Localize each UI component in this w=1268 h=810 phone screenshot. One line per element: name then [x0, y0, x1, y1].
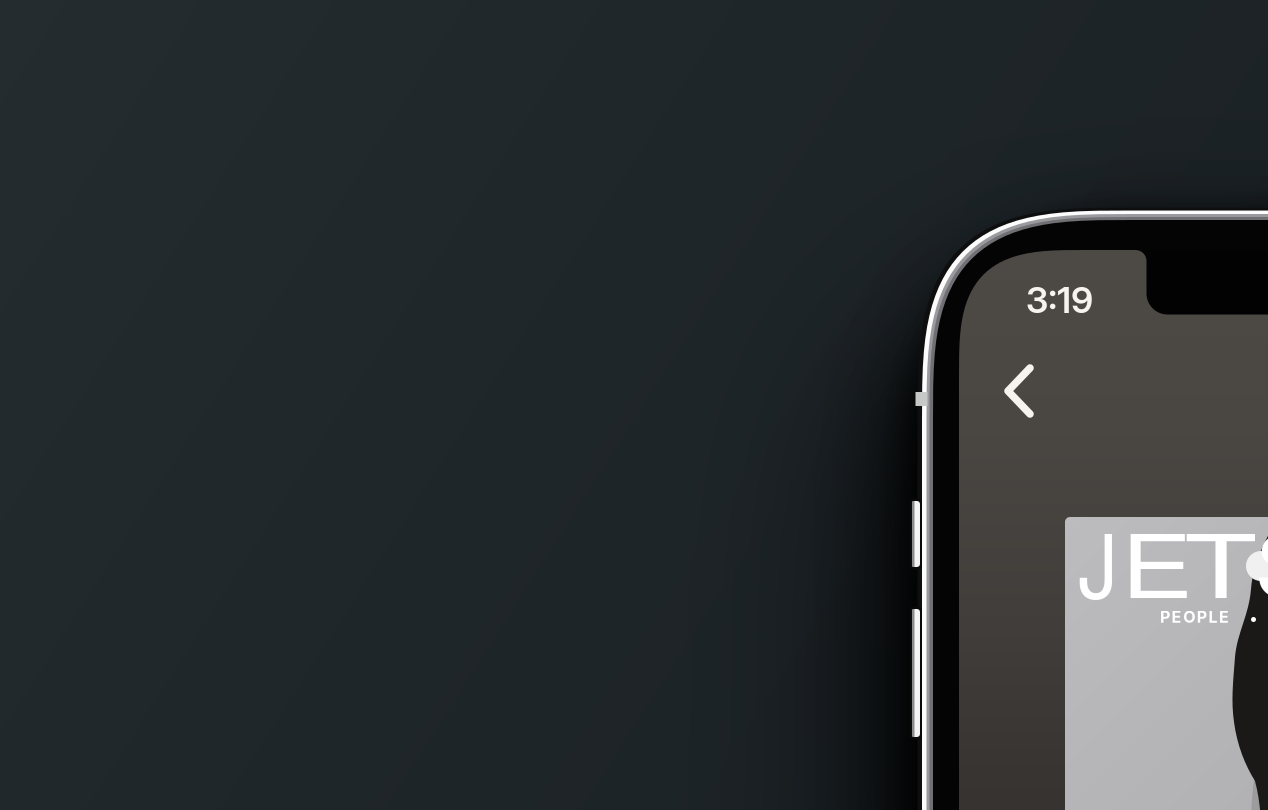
staticText: 3:19 [1026, 278, 1093, 322]
staticText: S [1262, 497, 1268, 623]
button[interactable]: Back [995, 361, 1051, 427]
staticText: T [1194, 497, 1248, 623]
staticText: PEOPLE [1160, 607, 1229, 627]
staticText: E [1127, 497, 1186, 623]
staticText: J [1076, 497, 1120, 623]
